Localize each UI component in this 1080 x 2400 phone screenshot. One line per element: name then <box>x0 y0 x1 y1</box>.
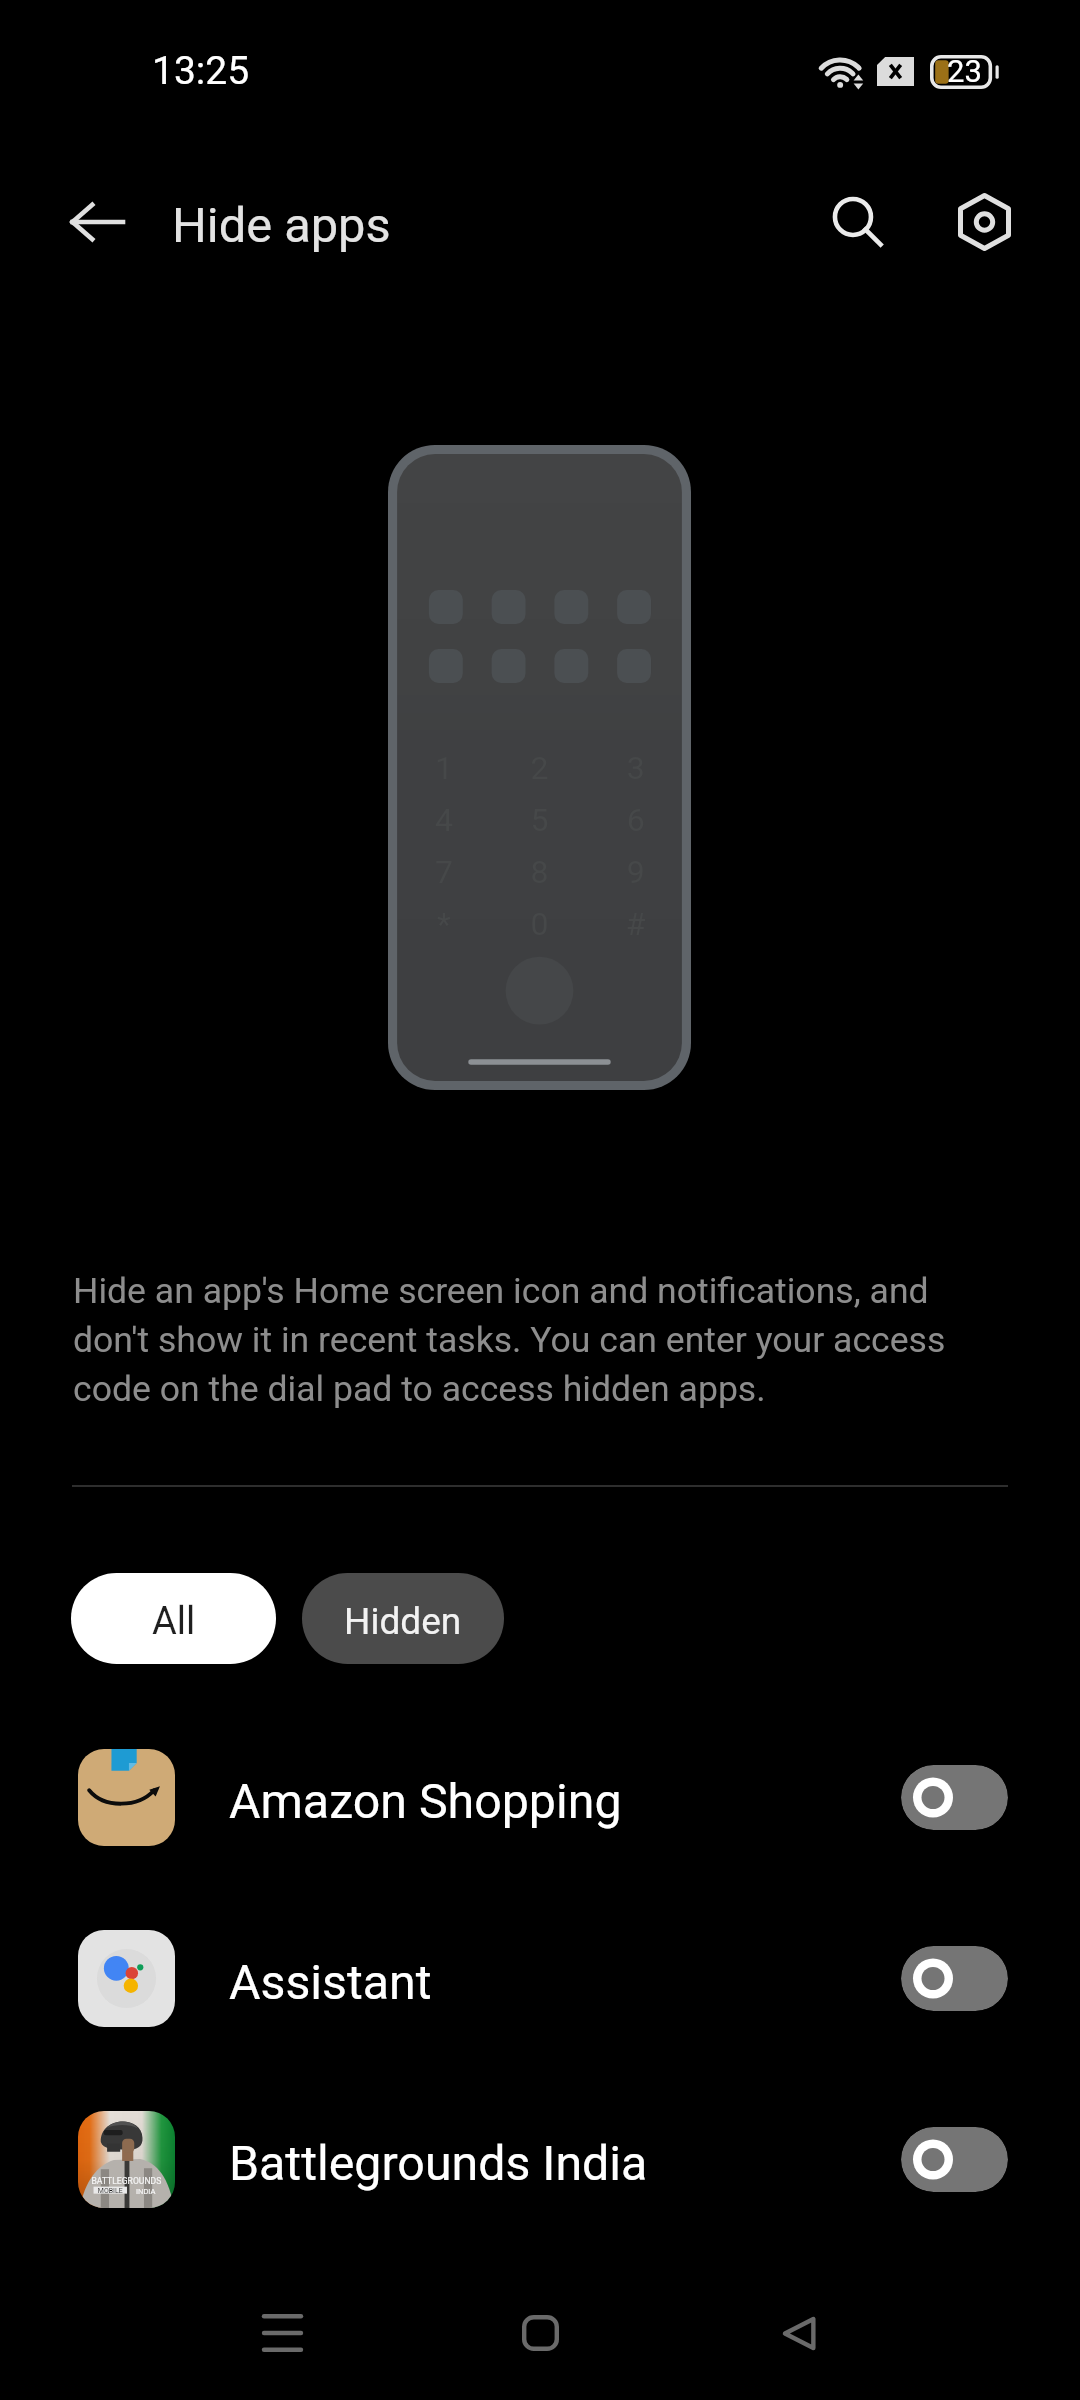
staticText: Battlegrounds India <box>229 2135 901 2192</box>
button[interactable]: Home <box>480 2273 600 2393</box>
button[interactable]: Search <box>810 174 906 270</box>
staticText: Assistant <box>229 1954 901 2011</box>
button[interactable]: Recent apps <box>222 2273 342 2393</box>
button[interactable]: Assistant <box>0 1902 1080 2055</box>
button[interactable]: Battlegrounds India <box>0 2083 1080 2236</box>
button[interactable]: Hide Battlegrounds India <box>901 2127 1008 2192</box>
staticText: Hide apps <box>172 197 391 254</box>
staticText: 23 <box>947 53 982 87</box>
button[interactable]: Hide Assistant <box>901 1946 1008 2011</box>
staticText: 13:25 <box>152 48 250 94</box>
staticText: Hide an app's Home screen icon and notif… <box>73 1270 985 1409</box>
staticText: Hidden <box>344 1600 462 1643</box>
button[interactable]: Amazon Shopping <box>0 1721 1080 1874</box>
staticText: Amazon Shopping <box>229 1773 901 1830</box>
button[interactable]: Back <box>738 2273 858 2393</box>
button[interactable]: Settings <box>936 174 1032 270</box>
button[interactable]: Hide Amazon Shopping <box>901 1765 1008 1830</box>
button[interactable]: Hidden <box>302 1573 504 1664</box>
staticText: All <box>152 1599 196 1644</box>
button[interactable]: All <box>71 1573 276 1664</box>
button[interactable]: Back <box>48 174 144 270</box>
